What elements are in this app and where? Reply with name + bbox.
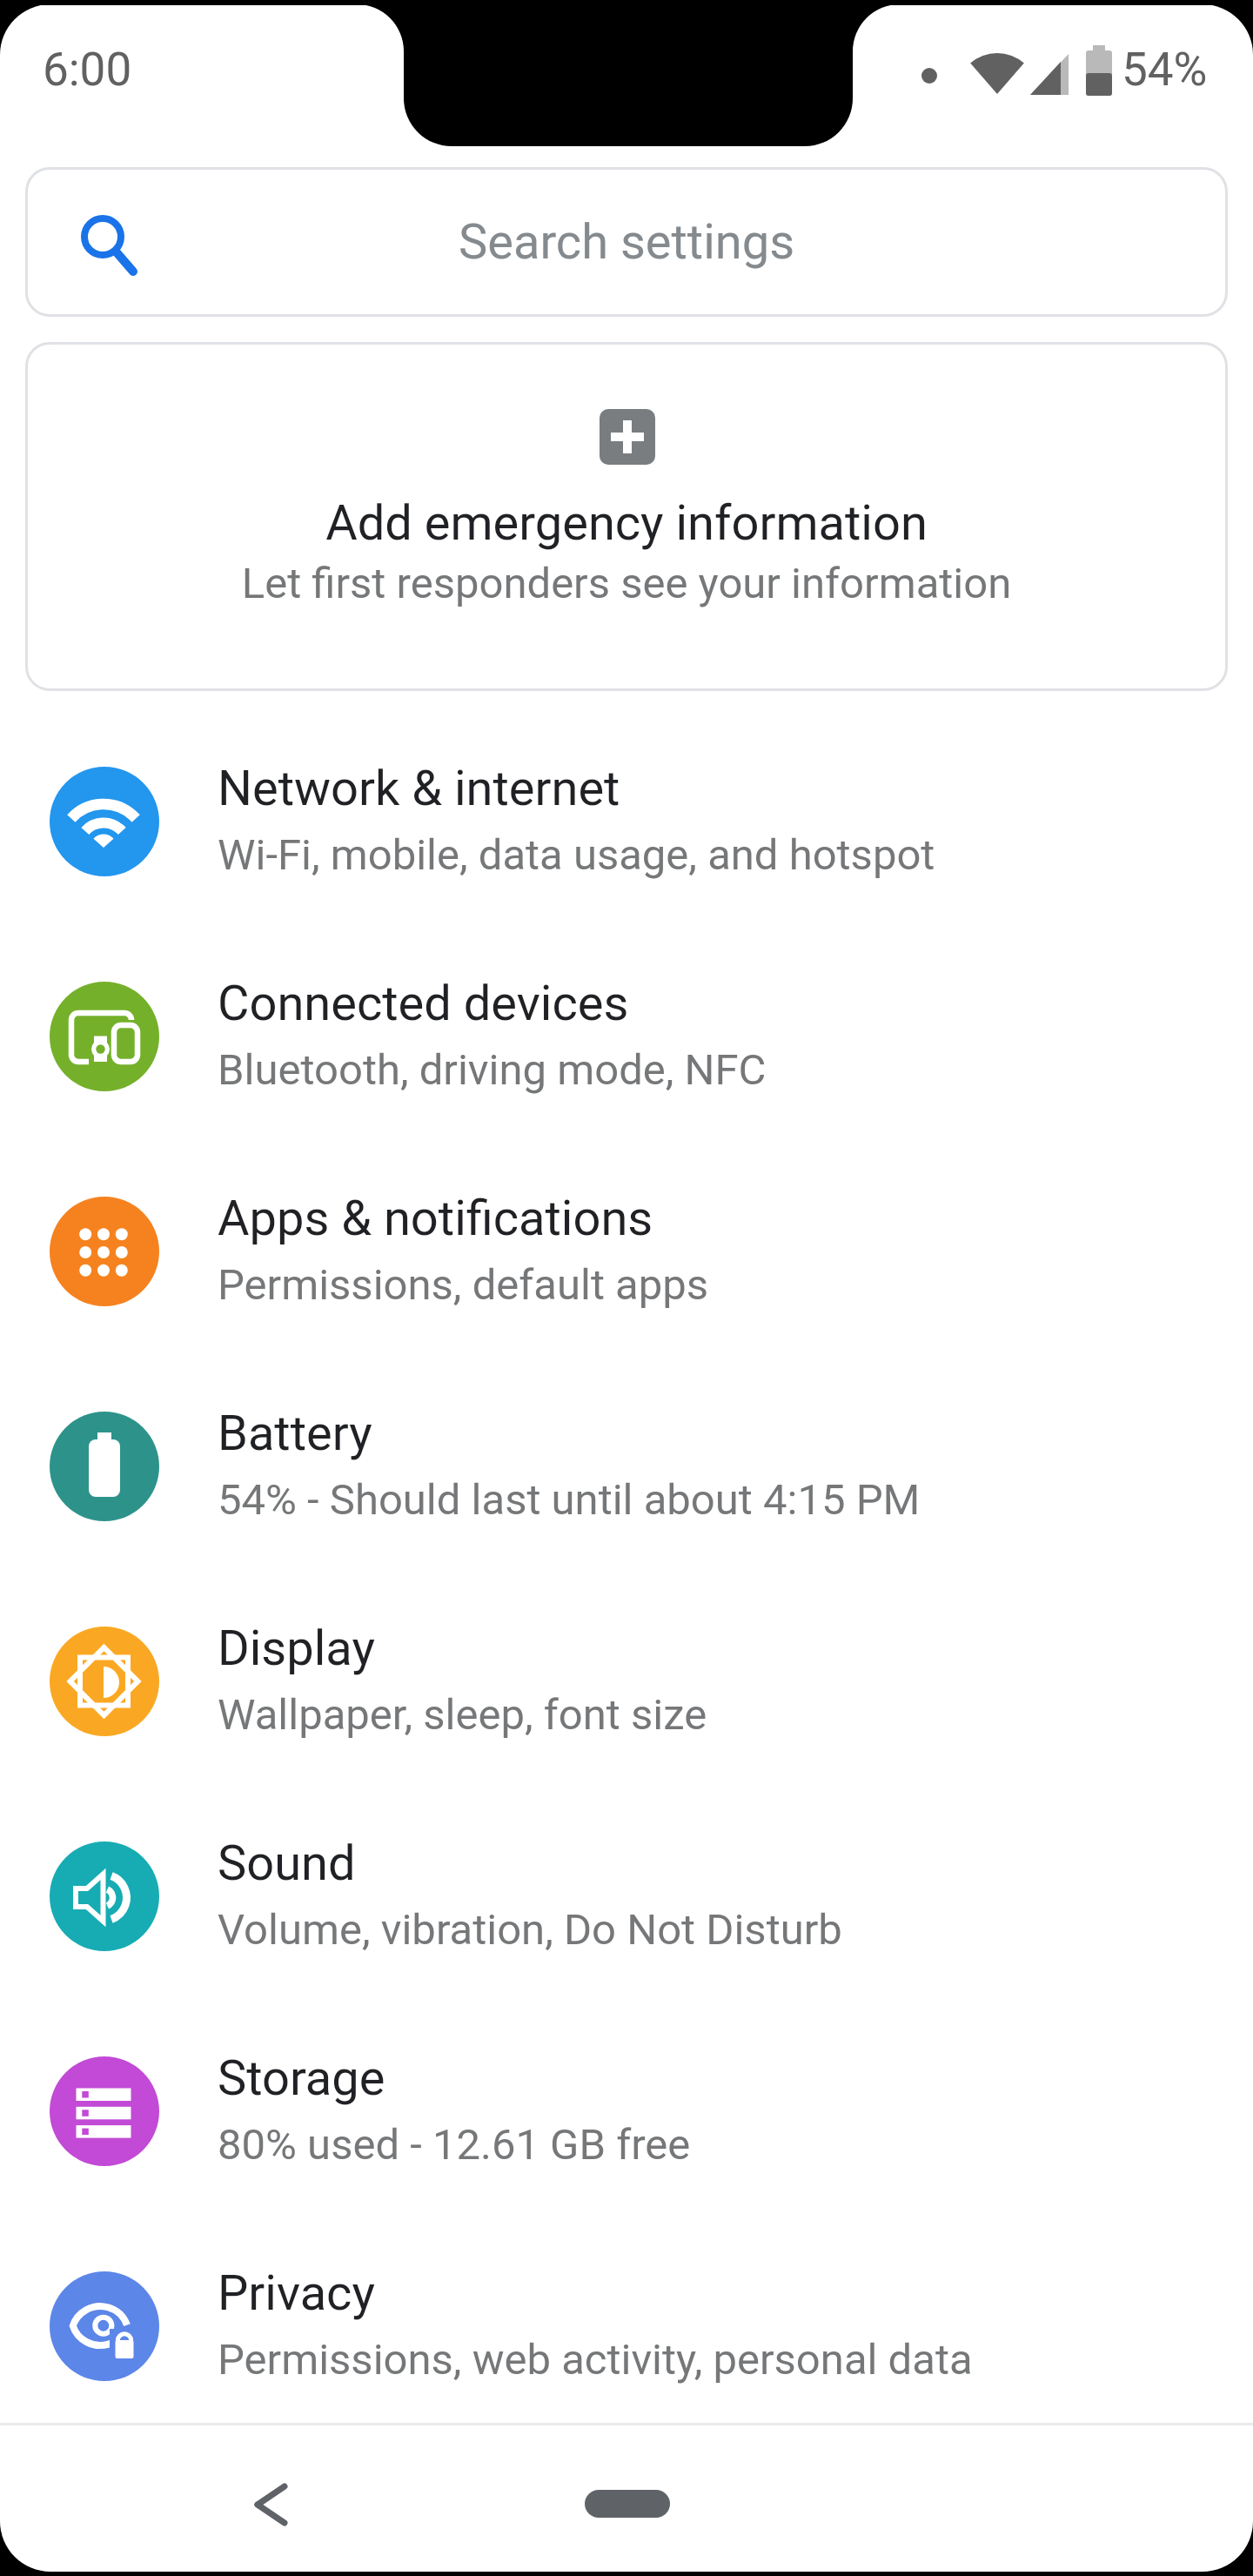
staticText: Permissions, web activity, personal data xyxy=(218,2335,973,2385)
staticText: Bluetooth, driving mode, NFC xyxy=(218,1045,767,1095)
staticText: 6:00 xyxy=(43,43,132,97)
staticText: Sound xyxy=(218,1835,356,1892)
staticText: 80% used - 12.61 GB free xyxy=(218,2120,691,2170)
staticText: Wallpaper, sleep, font size xyxy=(218,1690,707,1740)
staticText: Privacy xyxy=(218,2264,375,2322)
staticText: 54% xyxy=(1122,43,1208,97)
staticText: Connected devices xyxy=(218,975,629,1032)
staticText: Network & internet xyxy=(218,760,620,817)
staticText: Add emergency information xyxy=(25,494,1228,552)
staticText: Volume, vibration, Do Not Disturb xyxy=(218,1905,842,1955)
staticText: 54% - Should last until about 4:15 PM xyxy=(218,1475,921,1525)
staticText: Let first responders see your informatio… xyxy=(25,559,1228,608)
staticText: Wi-Fi, mobile, data usage, and hotspot xyxy=(218,830,935,880)
staticText: Storage xyxy=(218,2049,385,2107)
staticText: Permissions, default apps xyxy=(218,1260,709,1310)
staticText: Battery xyxy=(218,1405,372,1462)
staticText: Display xyxy=(218,1620,375,1677)
staticText: Search settings xyxy=(459,213,795,271)
staticText: Apps & notifications xyxy=(218,1190,653,1247)
